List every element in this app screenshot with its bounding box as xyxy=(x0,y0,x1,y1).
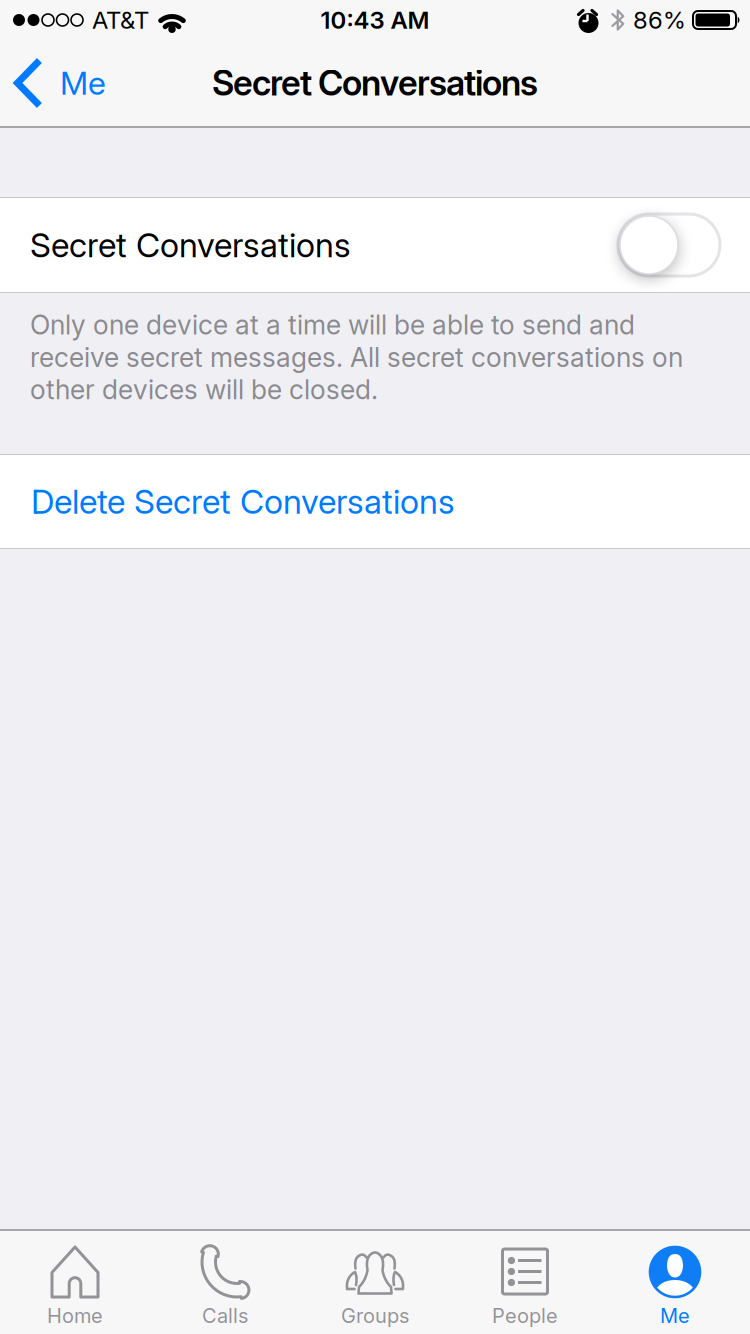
button[interactable]: Secret Conversations xyxy=(618,214,720,276)
staticText: 10:43 AM xyxy=(320,6,429,34)
staticText: People xyxy=(492,1304,558,1328)
staticText: Me xyxy=(60,64,106,102)
staticText: AT&T xyxy=(92,6,149,34)
staticText: Secret Conversations xyxy=(212,63,538,103)
button[interactable]: Delete Secret Conversations xyxy=(0,455,750,548)
staticText: Groups xyxy=(341,1304,409,1328)
staticText: Me xyxy=(660,1304,690,1328)
button[interactable]: Calls xyxy=(150,1231,300,1334)
staticText: 86% xyxy=(633,6,686,34)
staticText: Only one device at a time will be able t… xyxy=(30,309,635,340)
button[interactable]: Me xyxy=(600,1231,750,1334)
button[interactable]: Groups xyxy=(300,1231,450,1334)
button[interactable]: Home xyxy=(0,1231,150,1334)
button[interactable]: People xyxy=(450,1231,600,1334)
staticText: receive secret messages. All secret conv… xyxy=(30,341,683,373)
staticText: other devices will be closed. xyxy=(30,374,378,405)
staticText: Home xyxy=(47,1304,103,1328)
staticText: Calls xyxy=(202,1304,248,1328)
staticText: Secret Conversations xyxy=(30,225,351,265)
staticText: Delete Secret Conversations xyxy=(31,482,455,521)
button[interactable]: Back to Me xyxy=(0,59,120,107)
